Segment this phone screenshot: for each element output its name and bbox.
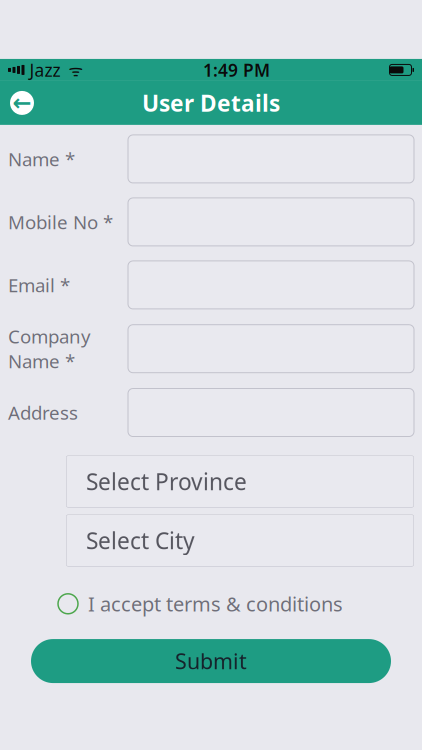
staticText: Jazz: [24, 58, 60, 81]
staticText: Submit: [175, 647, 247, 675]
button[interactable]: Email *: [128, 261, 414, 309]
button[interactable]: I accept terms & conditions: [0, 582, 422, 625]
staticText: Email *: [8, 272, 70, 297]
button[interactable]: Select Province: [66, 455, 414, 507]
staticText: Select Province: [86, 466, 247, 497]
button[interactable]: Address: [128, 388, 414, 436]
staticText: Select City: [86, 525, 195, 556]
button[interactable]: Select City: [66, 514, 414, 566]
staticText: Company Name *: [8, 324, 91, 373]
staticText: Address: [8, 400, 78, 425]
button[interactable]: Back: [0, 82, 44, 124]
button[interactable]: Mobile No *: [128, 198, 414, 246]
staticText: Mobile No *: [8, 209, 113, 234]
staticText: I accept terms & conditions: [88, 590, 343, 617]
button[interactable]: Name *: [128, 135, 414, 183]
staticText: ←: [12, 90, 31, 116]
staticText: ᯤ: [60, 59, 83, 80]
staticText: Name *: [8, 146, 75, 171]
button[interactable]: Submit: [31, 639, 391, 683]
button[interactable]: Company Name *: [128, 325, 414, 373]
staticText: 1:49 PM: [203, 58, 270, 81]
staticText: User Details: [142, 88, 280, 118]
